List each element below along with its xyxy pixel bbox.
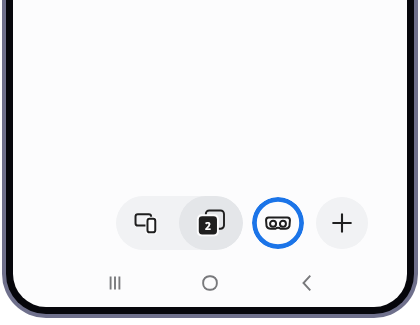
button[interactable]: Tabs, 2 open [179,196,243,250]
button[interactable]: Recent apps [91,263,139,303]
button[interactable]: New tab [316,197,368,249]
button[interactable]: Back [283,263,331,303]
button[interactable]: Home [186,263,234,303]
button[interactable]: Sync devices [116,196,179,250]
staticText: 2 [205,219,211,233]
button[interactable]: Incognito tabs [252,197,304,249]
